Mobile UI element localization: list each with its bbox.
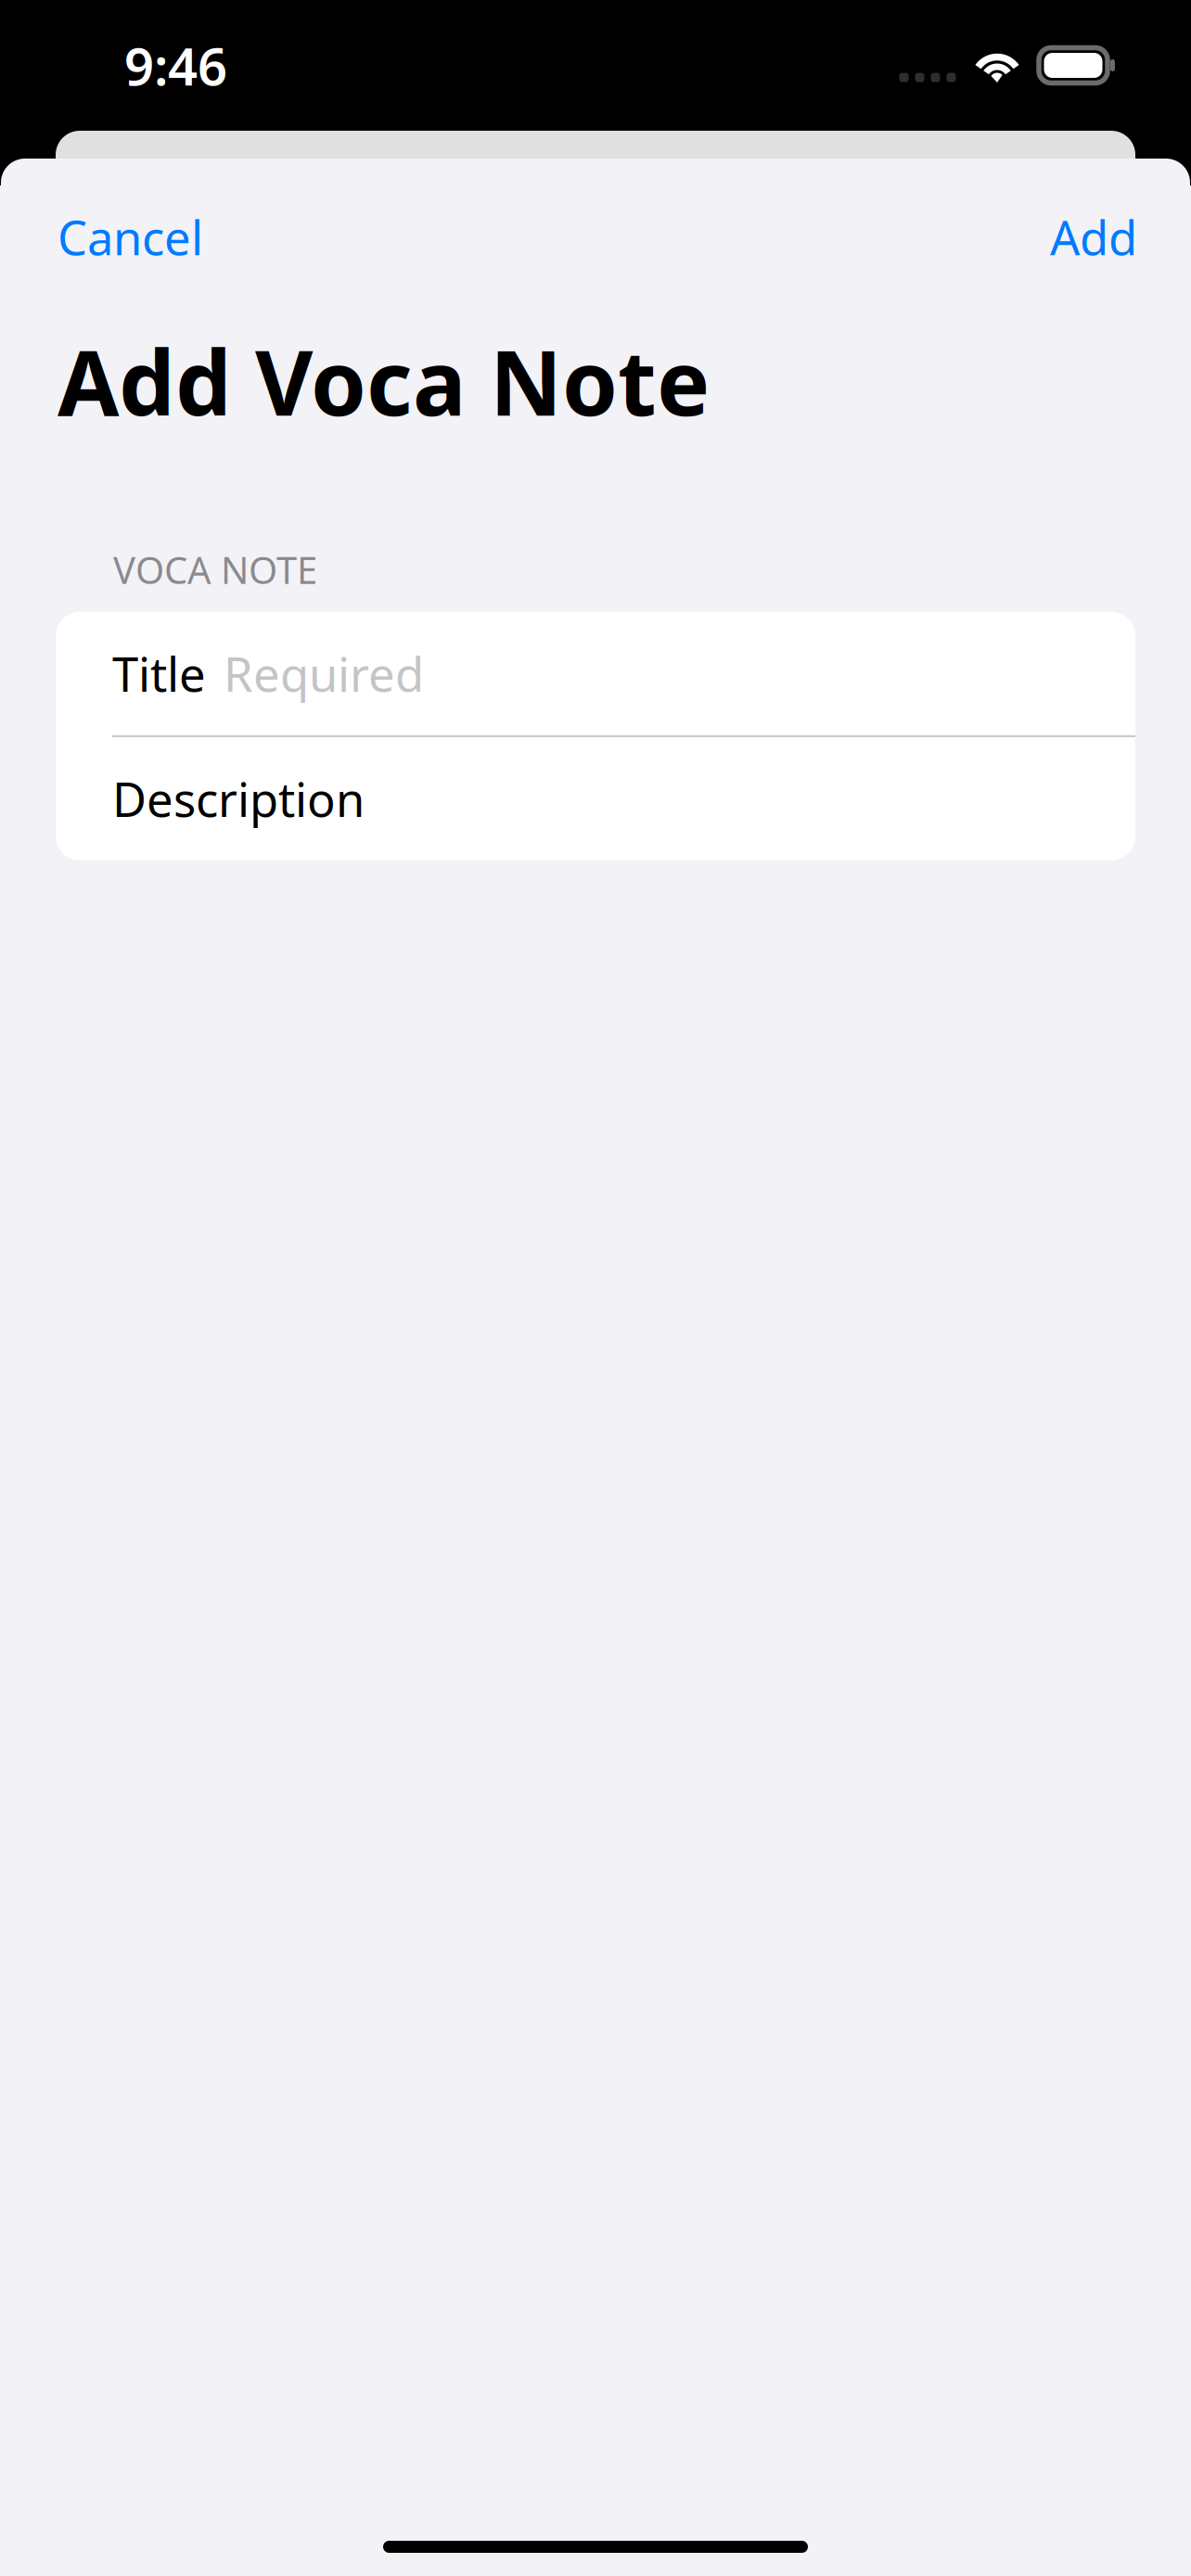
button[interactable]: Description	[56, 737, 1135, 860]
button[interactable]: Title	[56, 612, 1135, 735]
staticText: Description	[112, 768, 365, 830]
staticText: Add	[1050, 206, 1137, 268]
staticText: Cancel	[58, 206, 203, 268]
staticText: Add Voca Note	[58, 322, 710, 440]
button[interactable]: Cancel	[48, 193, 212, 281]
staticText: 9:46	[124, 31, 227, 100]
staticText: Required	[224, 642, 424, 705]
button[interactable]: Add	[1041, 193, 1146, 281]
staticText: VOCA NOTE	[113, 545, 317, 594]
staticText: Title	[112, 642, 206, 705]
